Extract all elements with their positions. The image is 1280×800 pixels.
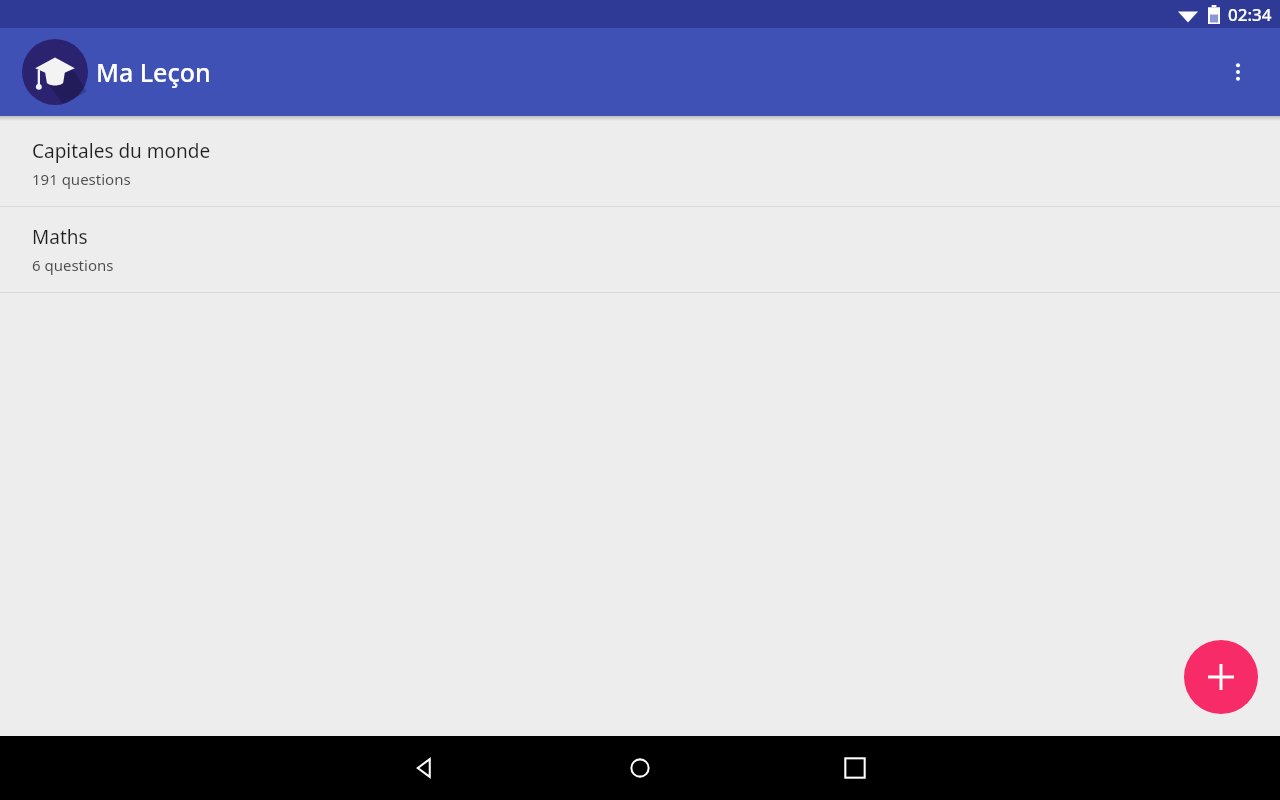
button[interactable]: Capitales du monde [0, 121, 1280, 206]
button[interactable]: Home [608, 744, 672, 792]
button[interactable]: More options [1214, 48, 1262, 96]
button[interactable]: Back [392, 744, 456, 792]
button[interactable]: Add lesson [1184, 640, 1258, 714]
button[interactable]: Maths [0, 207, 1280, 292]
staticText: 191 questions [32, 169, 131, 189]
staticText: Maths [32, 224, 88, 250]
staticText: Capitales du monde [32, 138, 211, 164]
staticText: 02:34 [1228, 3, 1272, 26]
staticText: Ma Leçon [96, 55, 211, 89]
button[interactable]: Recent apps [823, 744, 887, 792]
staticText: 6 questions [32, 255, 114, 275]
